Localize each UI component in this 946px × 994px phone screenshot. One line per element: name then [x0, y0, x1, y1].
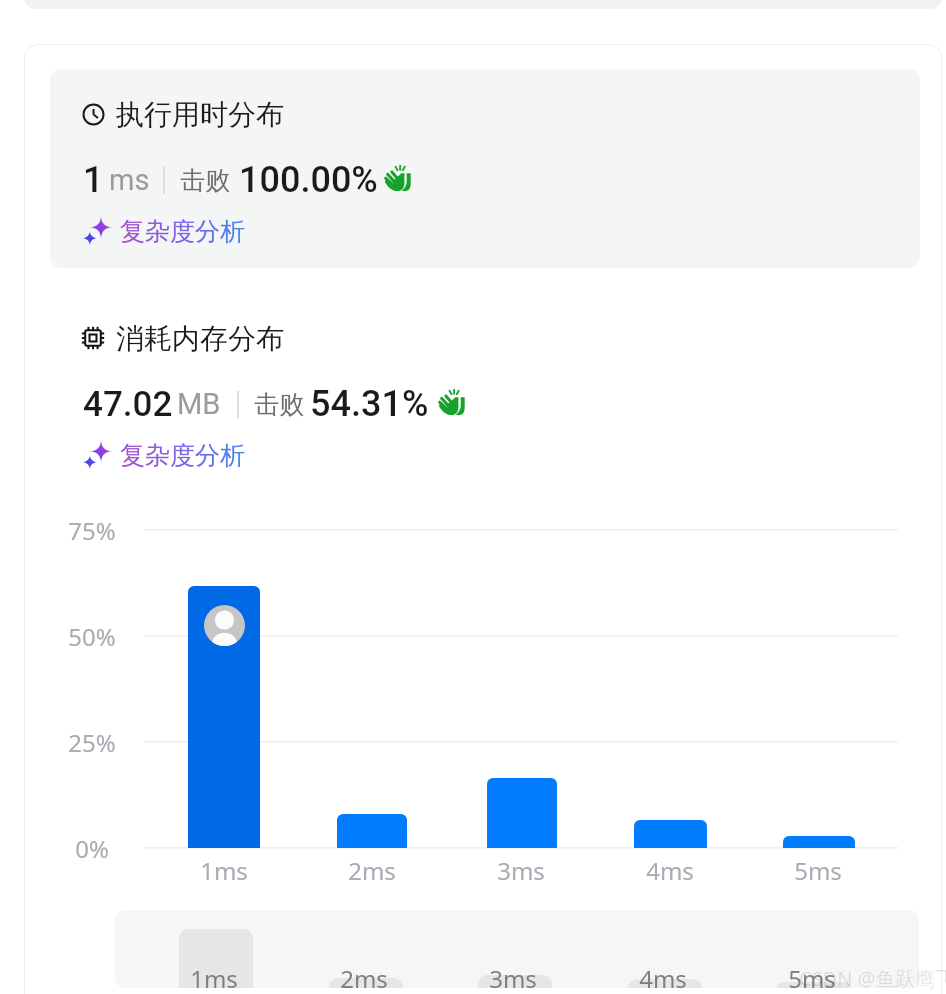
staticText: 1ms [174, 854, 274, 887]
other: Memory [81, 326, 105, 350]
staticText: 复杂度分析 [120, 216, 245, 247]
staticText: MB [177, 387, 221, 421]
button[interactable]: 复杂度分析 [82, 212, 245, 250]
button[interactable]: 复杂度分析 [82, 436, 245, 474]
staticText: 0% [42, 832, 142, 865]
staticText: 75% [42, 514, 142, 547]
staticText: 复杂度分析 [120, 440, 245, 471]
staticText: 消耗内存分布 [116, 321, 284, 356]
staticText: 25% [42, 726, 142, 759]
staticText: 1ms [164, 962, 264, 994]
staticText: 5ms [768, 854, 868, 887]
staticText: 击败 [180, 165, 230, 196]
button[interactable]: 1ms selector [179, 929, 253, 988]
button[interactable]: 3ms bar [487, 778, 557, 848]
button[interactable]: 1ms bar [188, 586, 260, 848]
button[interactable]: 4ms bar [634, 820, 707, 848]
staticText: 5ms [762, 962, 862, 994]
staticText: 100.00% [239, 159, 378, 201]
button[interactable]: 5ms selector [777, 982, 851, 988]
staticText: 4ms [620, 854, 720, 887]
staticText: 54.31% [310, 383, 429, 425]
staticText: 4ms [613, 962, 713, 994]
staticText: 2ms [322, 854, 422, 887]
staticText: 击败 [254, 389, 304, 420]
staticText: 1 [83, 159, 104, 201]
button[interactable]: 3ms selector [478, 975, 552, 988]
button[interactable]: 2ms selector [329, 978, 403, 988]
button[interactable]: 2ms bar [337, 814, 407, 848]
other: Applause [381, 164, 414, 197]
staticText: 47.02 [83, 384, 173, 425]
other: Applause [435, 388, 468, 421]
other: Runtime [82, 103, 105, 126]
staticText: 3ms [471, 854, 571, 887]
staticText: 50% [42, 620, 142, 653]
button[interactable]: Your submission [204, 605, 245, 646]
button[interactable]: 4ms selector [628, 979, 702, 988]
staticText: 执行用时分布 [116, 97, 284, 132]
staticText: CSDN @鱼跃鹰飞 [799, 965, 946, 992]
staticText: 2ms [314, 962, 414, 994]
staticText: ms [109, 163, 150, 197]
staticText: 3ms [463, 962, 563, 994]
button[interactable]: 5ms bar [783, 836, 855, 848]
